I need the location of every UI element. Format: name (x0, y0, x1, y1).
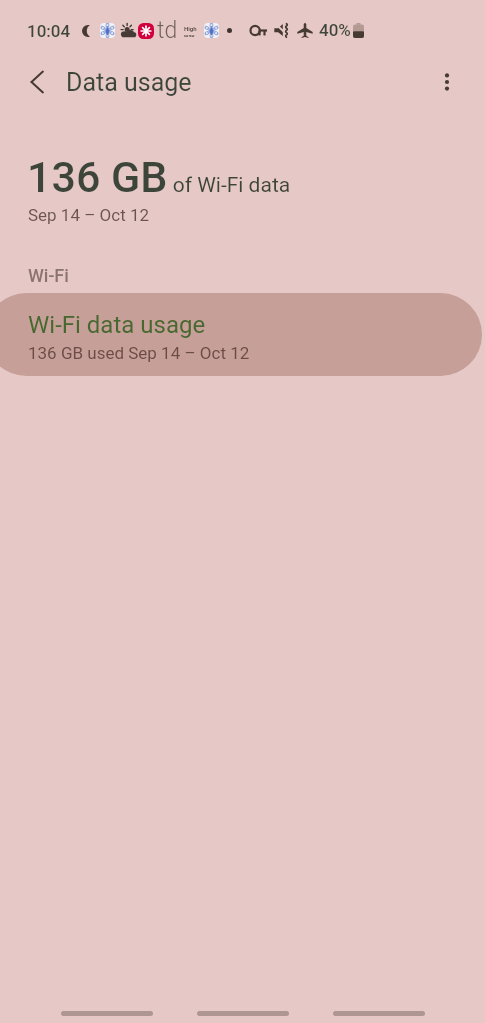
button[interactable]: Navigate up (14, 60, 58, 104)
staticText: 10:04 (27, 21, 71, 41)
staticText: 136 GB used Sep 14 – Oct 12 (28, 343, 250, 363)
staticText: 40% (319, 20, 351, 40)
staticText: Sep 14 – Oct 12 (28, 205, 150, 225)
staticText: Wi-Fi (28, 265, 69, 286)
button[interactable]: Back (333, 999, 425, 1023)
staticText: 136 GB of Wi-Fi data (27, 152, 291, 202)
staticText: Data usage (66, 68, 192, 97)
staticText: Wi-Fi data usage (28, 311, 206, 339)
button[interactable]: Home (197, 999, 289, 1023)
button[interactable]: More options (425, 60, 469, 104)
staticText: Highway (184, 25, 199, 37)
button[interactable]: Recents (61, 999, 153, 1023)
staticText: td (157, 17, 178, 44)
button[interactable]: Wi-Fi data usage (0, 293, 485, 376)
